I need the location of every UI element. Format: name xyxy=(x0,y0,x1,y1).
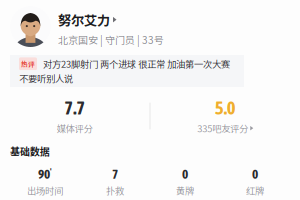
button[interactable]: 努尔艾力 xyxy=(0,6,300,47)
staticText: 0 xyxy=(182,166,188,182)
staticText: 5.0 xyxy=(215,97,236,118)
staticText: 扑救 xyxy=(106,184,124,197)
staticText: 红牌 xyxy=(246,184,264,197)
staticText: 对方23脚射门 两个进球 很正常 加油第一次大赛 xyxy=(43,57,230,70)
staticText: 出场时间 xyxy=(27,184,63,197)
staticText: 90 xyxy=(38,166,50,182)
staticText: 0 xyxy=(252,166,258,182)
staticText: 黄牌 xyxy=(176,184,194,197)
staticText: 努尔艾力 xyxy=(58,10,110,29)
staticText: 媒体评分 xyxy=(57,121,93,135)
staticText: 北京国安 | 守门员 | 33号 xyxy=(58,32,164,47)
staticText: 不要听别人说 xyxy=(19,71,73,85)
staticText: 基础数据 xyxy=(10,144,50,158)
staticText: 7.7 xyxy=(64,97,85,118)
button[interactable]: 热评 xyxy=(10,55,244,87)
staticText: 热评 xyxy=(21,59,35,69)
button[interactable]: 5.0 xyxy=(150,97,300,135)
staticText: ' xyxy=(50,166,52,177)
staticText: 7 xyxy=(112,166,118,182)
staticText: 335吧友评分 xyxy=(197,121,248,135)
